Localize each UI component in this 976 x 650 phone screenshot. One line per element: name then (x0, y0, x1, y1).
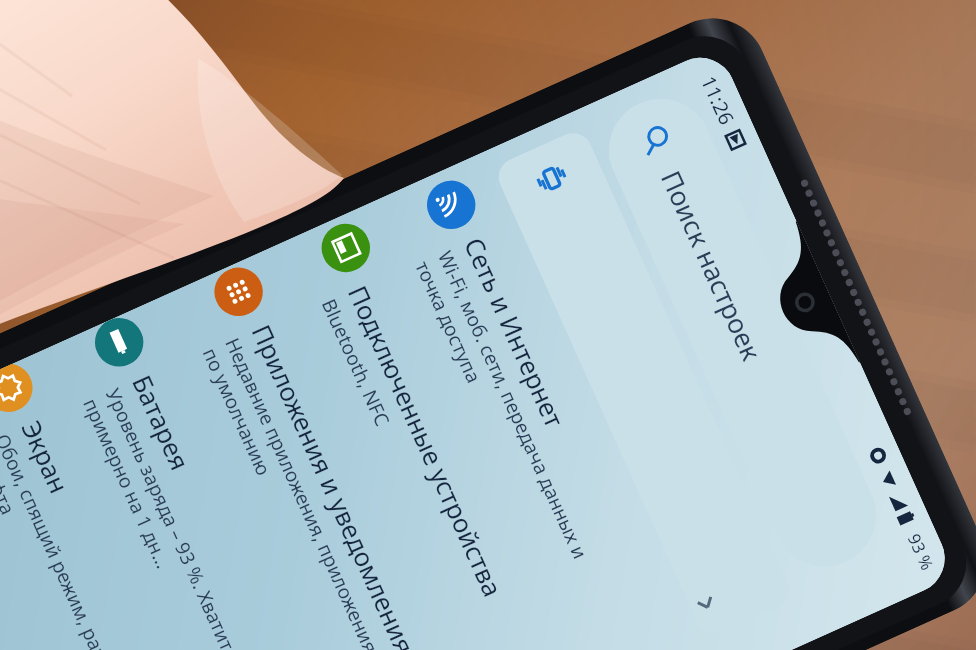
staticText: Уровень заряда – 93 %. Хватит примерно н… (78, 384, 266, 650)
button[interactable]: Vibration (492, 127, 795, 640)
staticText: Wi-Fi, моб. сети, передача данных и точк… (410, 246, 598, 581)
button[interactable]: Search (592, 82, 892, 583)
other: Search (635, 121, 675, 160)
staticText: Обои, спящий режим, размер шрифта (0, 429, 155, 650)
button[interactable]: Батарея (68, 301, 389, 650)
staticText: 11:26 (695, 72, 741, 130)
staticText: Bluetooth, NFC (316, 294, 481, 619)
staticText: 93 % (903, 530, 939, 574)
button[interactable]: Подключенные устройства (295, 207, 613, 650)
staticText: Сеть и Интернет (457, 232, 573, 433)
button[interactable]: Сеть и Интернет (400, 164, 717, 650)
button[interactable]: Экран (0, 350, 279, 650)
staticText: Недавние приложения, приложения по умолч… (198, 333, 385, 650)
staticText: Поиск настроек (653, 165, 770, 366)
staticText: Батарея (125, 369, 198, 476)
staticText: Приложения и уведомления (245, 319, 423, 650)
other: Vibration (529, 156, 574, 201)
staticText: Экран (14, 415, 77, 498)
button[interactable]: Приложения и уведомления (188, 251, 508, 650)
staticText: Подключенные устройства (341, 280, 511, 602)
